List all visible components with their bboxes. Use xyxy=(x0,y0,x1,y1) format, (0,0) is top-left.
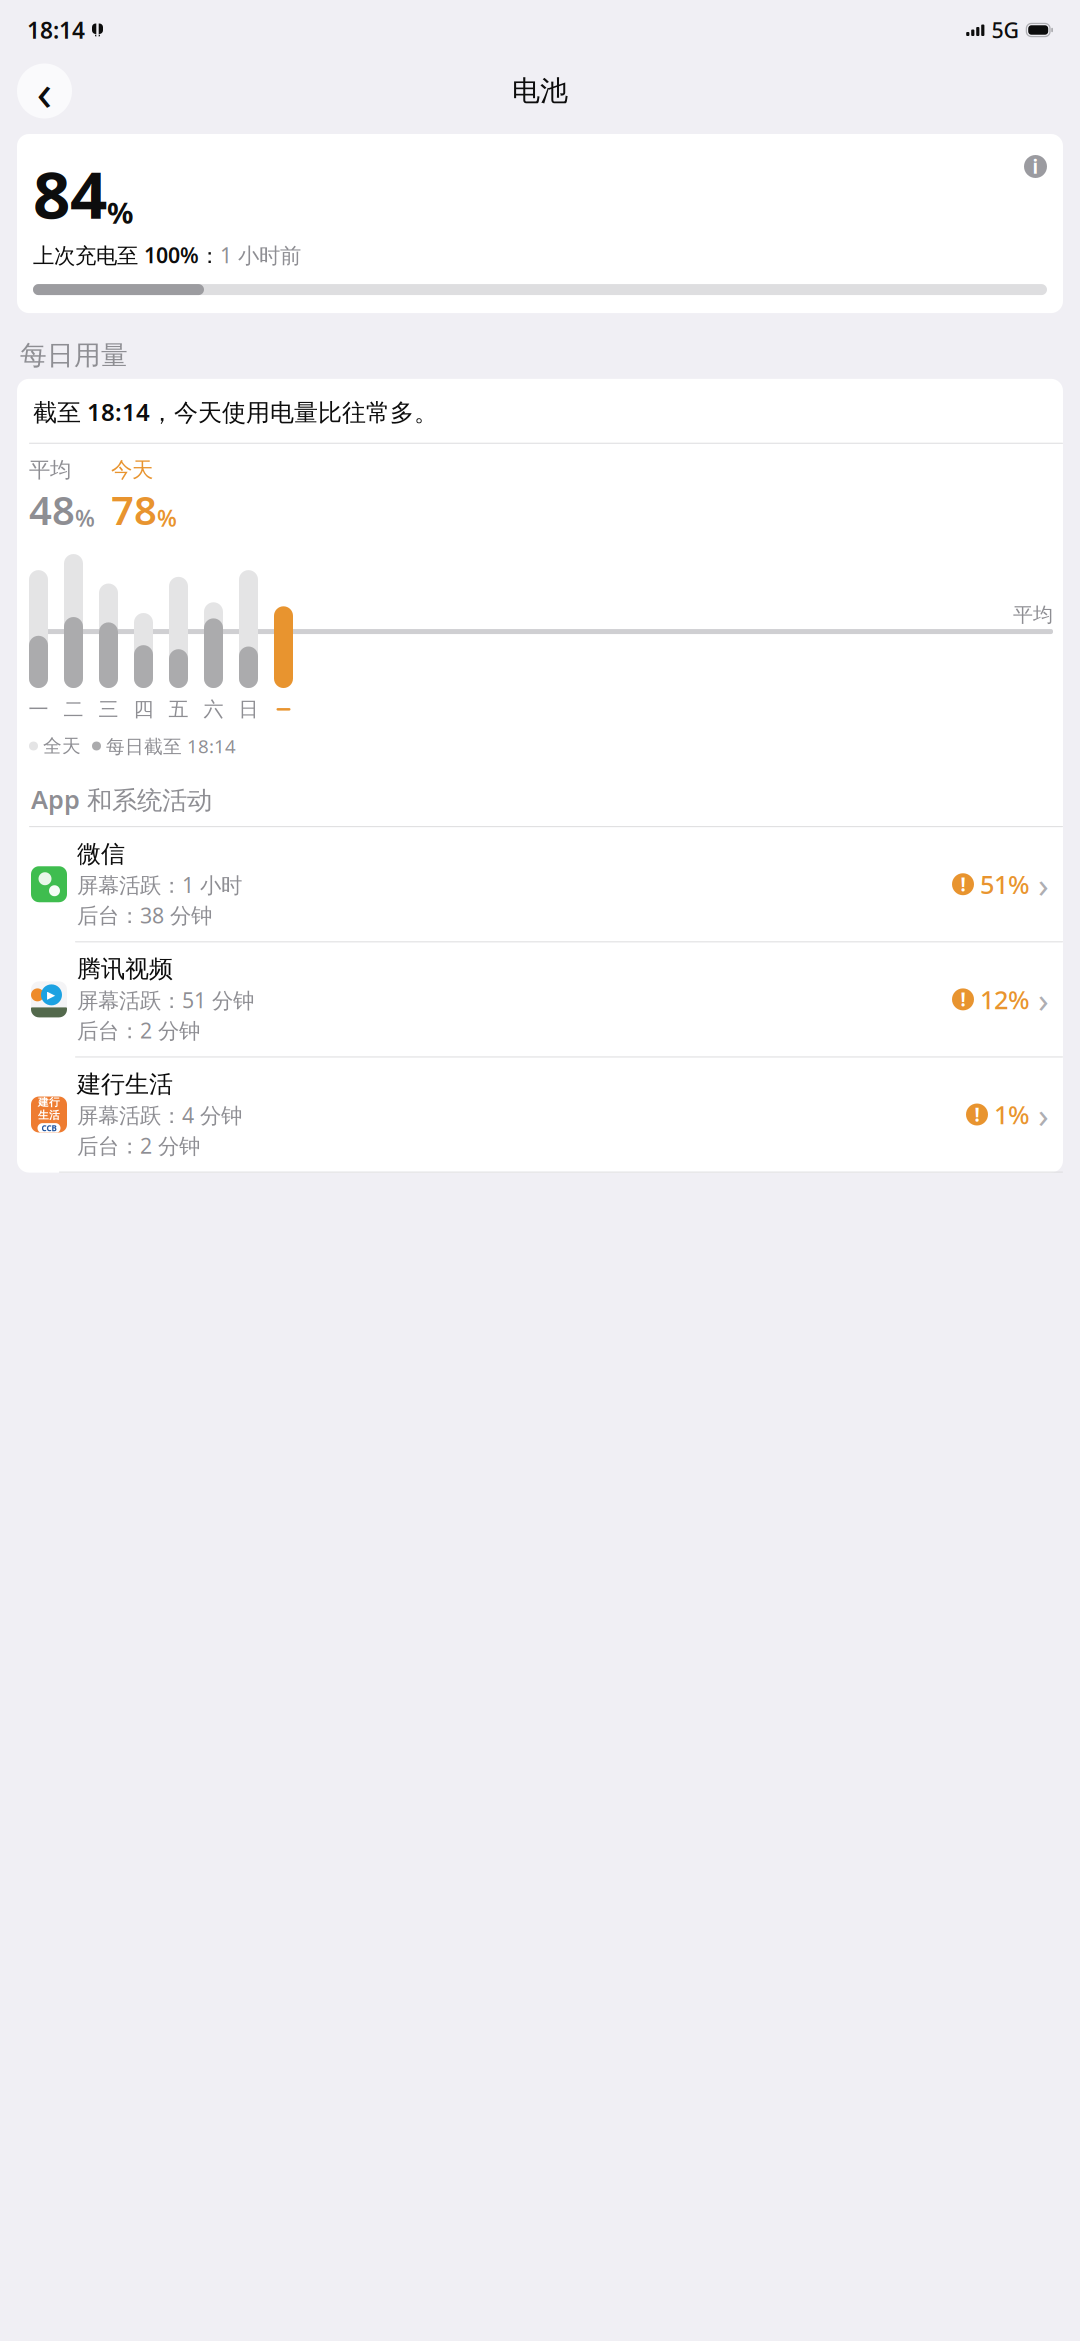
staticText: 51% xyxy=(980,867,1030,901)
staticText: 四 xyxy=(133,697,153,722)
staticText: 一 xyxy=(28,697,48,722)
button[interactable]: 建行 xyxy=(17,1057,1063,1171)
staticText: › xyxy=(1038,1091,1049,1137)
staticText: ! xyxy=(960,872,965,897)
staticText: 电池 xyxy=(512,74,568,108)
staticText: 今天 xyxy=(111,457,153,483)
staticText: 五 xyxy=(168,697,188,722)
button[interactable]: 返回 xyxy=(17,63,72,118)
staticText: 12% xyxy=(980,983,1030,1016)
staticText: ▶ xyxy=(47,989,55,1001)
staticText: 84 xyxy=(33,150,107,237)
staticText: 平均 xyxy=(29,457,71,483)
staticText: App 和系统活动 xyxy=(31,782,212,816)
staticText: 微信 xyxy=(77,839,125,869)
staticText: 六 xyxy=(203,697,223,722)
button[interactable]: 微信 xyxy=(17,827,1063,941)
staticText: 48 xyxy=(29,483,75,536)
staticText: i xyxy=(1032,154,1038,179)
staticText: 建行生活 xyxy=(77,1069,173,1099)
button[interactable]: 电池信息 xyxy=(1024,155,1047,178)
staticText: CCB xyxy=(41,1123,56,1133)
staticText: 后台：2 分钟 xyxy=(77,1131,200,1160)
staticText: 78 xyxy=(111,483,157,536)
staticText: % xyxy=(75,503,95,533)
staticText: 屏幕活跃：51 分钟 xyxy=(77,986,254,1014)
staticText: 1% xyxy=(994,1098,1030,1131)
staticText: 建行 xyxy=(38,1096,60,1109)
button[interactable]: ▶ xyxy=(17,942,1063,1056)
staticText: 三 xyxy=(98,697,118,722)
staticText: 5G xyxy=(991,16,1019,44)
staticText: 二 xyxy=(63,697,83,722)
staticText: 屏幕活跃：4 分钟 xyxy=(77,1101,242,1129)
staticText: 每日截至 18:14 xyxy=(106,734,236,758)
staticText: 后台：38 分钟 xyxy=(77,901,212,929)
staticText: 生活 xyxy=(38,1109,60,1122)
staticText: ! xyxy=(974,1102,979,1127)
staticText: ‹ xyxy=(36,57,52,125)
staticText: 腾讯视频 xyxy=(77,954,173,984)
staticText: 平均 xyxy=(1013,602,1053,627)
staticText: 上次充电至 100%： xyxy=(33,241,220,269)
staticText: 日 xyxy=(238,697,258,722)
staticText: 18:14 xyxy=(27,15,85,45)
staticText: › xyxy=(1038,976,1049,1022)
staticText: 截至 18:14，今天使用电量比往常多。 xyxy=(33,396,438,428)
staticText: % xyxy=(107,193,133,232)
staticText: › xyxy=(1038,861,1049,907)
staticText: 全天 xyxy=(43,734,81,757)
staticText: ! xyxy=(960,987,965,1012)
staticText: 屏幕活跃：1 小时 xyxy=(77,871,242,899)
staticText: 1 小时前 xyxy=(220,241,301,269)
staticText: 后台：2 分钟 xyxy=(77,1016,200,1044)
staticText: 每日用量 xyxy=(20,339,128,372)
staticText: % xyxy=(157,503,177,533)
